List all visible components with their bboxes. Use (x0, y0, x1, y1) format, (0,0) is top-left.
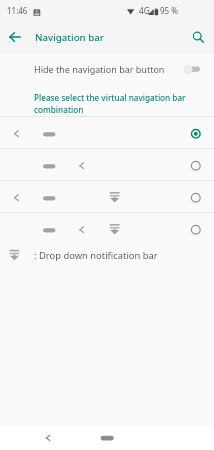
staticText: Please select the virtual navigation bar… (34, 92, 194, 115)
button[interactable]: Back (36, 426, 60, 450)
staticText: 4G (139, 5, 150, 16)
button[interactable]: Search (185, 24, 211, 50)
button[interactable]: Back (0, 22, 30, 52)
staticText: Navigation bar (35, 31, 104, 44)
button[interactable]: Hide the navigation bar button (0, 54, 214, 84)
button[interactable] (0, 181, 214, 212)
staticText: 11:46 (7, 5, 28, 16)
button[interactable] (0, 117, 214, 148)
button[interactable] (0, 149, 214, 180)
staticText: 95 % (160, 5, 178, 16)
staticText: Hide the navigation bar button (34, 63, 165, 75)
button[interactable] (0, 213, 214, 244)
staticText: : Drop down notification bar (34, 249, 158, 262)
